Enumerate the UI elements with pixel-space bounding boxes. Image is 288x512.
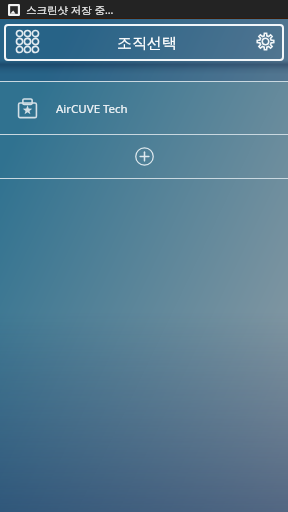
button[interactable]: Settings: [247, 24, 284, 58]
button[interactable]: AirCUVE Tech: [0, 82, 288, 134]
button[interactable]: Apps: [4, 24, 51, 58]
staticText: 조직선택: [117, 34, 177, 53]
staticText: AirCUVE Tech: [56, 101, 128, 117]
staticText: 스크린샷 저장 중...: [26, 3, 114, 17]
button[interactable]: Add organization: [0, 135, 288, 178]
